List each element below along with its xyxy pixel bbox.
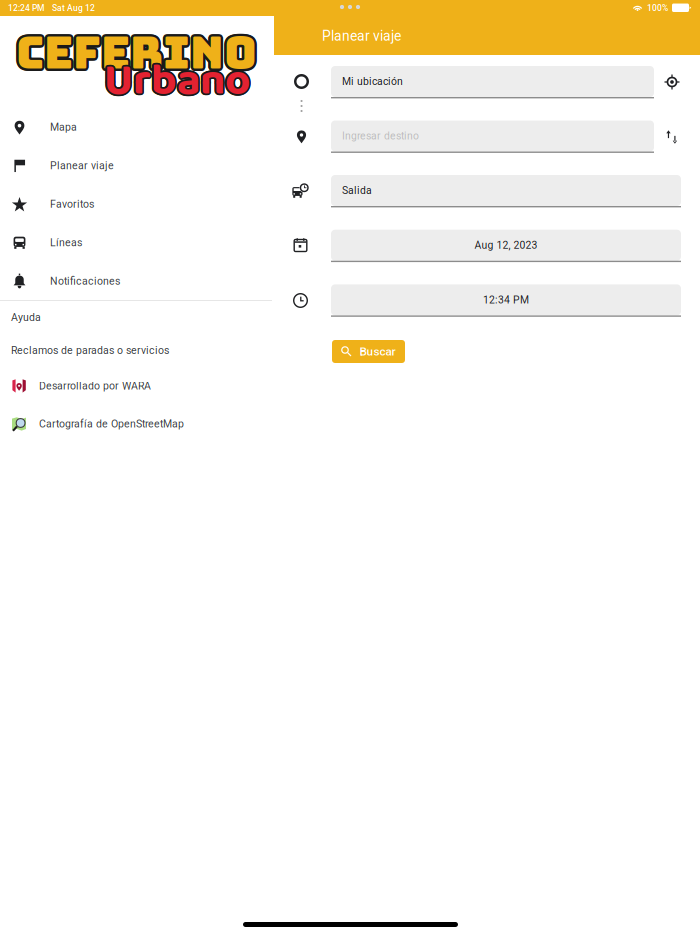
- staticText: CEFERINO: [17, 25, 258, 84]
- staticText: Sat Aug 12: [52, 3, 95, 13]
- staticText: 100%: [647, 3, 668, 13]
- staticText: Desarrollado por WARA: [39, 380, 151, 392]
- staticText: Urbano: [102, 47, 248, 117]
- staticText: CEFERINO: [18, 24, 259, 83]
- staticText: CEFERINO: [16, 23, 257, 82]
- staticText: Notificaciones: [50, 275, 120, 287]
- staticText: Urbano: [105, 47, 251, 118]
- button[interactable]: Desarrollado por WARA: [0, 367, 272, 405]
- staticText: Ingresar destino: [342, 130, 419, 142]
- staticText: Urbano: [104, 44, 250, 115]
- staticText: Aug 12, 2023: [474, 239, 537, 251]
- staticText: CEFERINO: [16, 25, 257, 84]
- staticText: Cartografía de OpenStreetMap: [39, 418, 184, 430]
- staticText: Urbano: [104, 48, 250, 118]
- staticText: 12:34 PM: [483, 294, 529, 306]
- staticText: 12:24 PM: [8, 3, 44, 13]
- staticText: Mi ubicación: [342, 75, 403, 88]
- staticText: Urbano: [105, 45, 251, 116]
- staticText: CEFERINO: [18, 23, 259, 82]
- button[interactable]: Buscar: [332, 340, 405, 363]
- staticText: Urbano: [102, 45, 248, 116]
- button[interactable]: Cartografía de OpenStreetMap: [0, 405, 272, 443]
- staticText: Reclamos de paradas o servicios: [11, 344, 169, 357]
- button[interactable]: Reclamos de paradas o servicios: [0, 334, 272, 367]
- button[interactable]: Ayuda: [0, 301, 272, 334]
- staticText: Urbano: [105, 44, 251, 115]
- staticText: CEFERINO: [14, 22, 255, 81]
- button[interactable]: Usar mi ubicación: [657, 67, 687, 97]
- button[interactable]: 12:34 PM: [331, 284, 681, 317]
- staticText: CEFERINO: [14, 24, 255, 83]
- staticText: CEFERINO: [15, 21, 256, 80]
- staticText: Líneas: [50, 237, 82, 249]
- button[interactable]: Planear viaje: [0, 146, 272, 185]
- staticText: CEFERINO: [15, 25, 256, 84]
- staticText: Salida: [342, 184, 372, 197]
- staticText: Buscar: [359, 345, 395, 358]
- staticText: Urbano: [106, 46, 252, 116]
- button[interactable]: Aug 12, 2023: [331, 230, 681, 262]
- staticText: CEFERINO: [14, 23, 255, 82]
- button[interactable]: Invertir origen y destino: [657, 122, 687, 152]
- staticText: Urbano: [105, 47, 251, 117]
- button[interactable]: Líneas: [0, 223, 272, 262]
- button[interactable]: Notificaciones: [0, 262, 272, 300]
- staticText: Mapa: [50, 121, 77, 133]
- staticText: Planear viaje: [322, 28, 401, 44]
- staticText: Urbano: [103, 47, 249, 118]
- staticText: CEFERINO: [17, 21, 258, 80]
- button[interactable]: Salida: [331, 175, 681, 207]
- staticText: Ayuda: [11, 311, 41, 324]
- staticText: Planear viaje: [50, 160, 114, 172]
- staticText: Urbano: [104, 46, 250, 116]
- staticText: Favoritos: [50, 198, 94, 210]
- staticText: CEFERINO: [18, 22, 259, 81]
- button[interactable]: Favoritos: [0, 185, 272, 223]
- staticText: Urbano: [103, 44, 249, 115]
- button[interactable]: Mapa: [0, 108, 272, 146]
- staticText: CEFERINO: [16, 21, 257, 80]
- staticText: Urbano: [102, 46, 248, 116]
